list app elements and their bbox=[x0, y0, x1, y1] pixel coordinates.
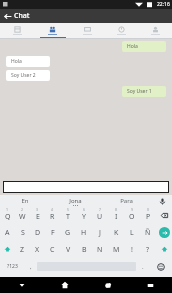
staticText: C bbox=[50, 245, 55, 255]
button[interactable]: G bbox=[60, 224, 76, 241]
button[interactable]: Message input bbox=[3, 181, 169, 193]
button[interactable]: 5 bbox=[60, 207, 76, 224]
staticText: Q bbox=[5, 212, 11, 222]
button[interactable]: Tab 5 bbox=[138, 23, 172, 38]
button[interactable]: H bbox=[76, 224, 92, 241]
button[interactable]: 1 bbox=[0, 207, 15, 224]
staticText: D bbox=[35, 228, 41, 238]
button[interactable]: ! bbox=[124, 241, 140, 258]
button[interactable]: Shift bbox=[156, 241, 172, 258]
staticText: 3 bbox=[36, 207, 39, 212]
staticText: 9 bbox=[131, 207, 134, 212]
staticText: V bbox=[66, 245, 71, 255]
staticText: G bbox=[65, 228, 71, 238]
button[interactable]: Comma bbox=[24, 258, 37, 275]
staticText: 1 bbox=[6, 207, 9, 212]
button[interactable]: Voice input bbox=[152, 195, 172, 207]
staticText: H bbox=[81, 228, 87, 238]
button[interactable]: D bbox=[30, 224, 45, 241]
button[interactable]: Ñ bbox=[140, 224, 156, 241]
staticText: ! bbox=[131, 245, 133, 255]
button[interactable]: L bbox=[124, 224, 140, 241]
staticText: U bbox=[97, 212, 103, 222]
staticText: F bbox=[51, 228, 55, 238]
button[interactable]: Enter bbox=[156, 224, 172, 241]
button[interactable]: Recents bbox=[86, 277, 129, 293]
button[interactable]: Home bbox=[43, 277, 86, 293]
button[interactable]: 7 bbox=[92, 207, 108, 224]
button[interactable]: Hola bbox=[6, 56, 50, 67]
button[interactable]: Tab 4 bbox=[104, 23, 138, 38]
button[interactable]: Emoji bbox=[149, 258, 172, 275]
button[interactable]: 2 bbox=[15, 207, 30, 224]
button[interactable]: S bbox=[15, 224, 30, 241]
staticText: Soy User 1 bbox=[127, 88, 152, 95]
button[interactable]: Tab 3 bbox=[70, 23, 104, 38]
staticText: 5 bbox=[67, 207, 70, 212]
staticText: Y bbox=[82, 212, 86, 222]
staticText: Ñ bbox=[145, 228, 151, 238]
button[interactable]: N bbox=[92, 241, 108, 258]
button[interactable]: 4 bbox=[45, 207, 60, 224]
button[interactable]: Soy User 2 bbox=[6, 70, 50, 81]
button[interactable]: Jona bbox=[50, 195, 101, 207]
button[interactable]: X bbox=[30, 241, 45, 258]
button[interactable]: J bbox=[92, 224, 108, 241]
button[interactable]: B bbox=[76, 241, 92, 258]
button[interactable]: V bbox=[60, 241, 76, 258]
staticText: 0 bbox=[147, 207, 150, 212]
button[interactable]: Tab 2 bbox=[35, 23, 70, 38]
button[interactable]: Tab 1 bbox=[0, 23, 35, 38]
button[interactable]: 3 bbox=[30, 207, 45, 224]
staticText: J bbox=[99, 228, 101, 238]
staticText: 8 bbox=[115, 207, 118, 212]
staticText: 2 bbox=[21, 207, 24, 212]
staticText: Chat bbox=[14, 11, 30, 21]
staticText: Para bbox=[120, 197, 133, 205]
button[interactable]: A bbox=[0, 224, 15, 241]
staticText: M bbox=[113, 245, 120, 255]
staticText: ? bbox=[146, 245, 150, 255]
staticText: K bbox=[114, 228, 119, 238]
button[interactable]: Hola bbox=[122, 41, 166, 52]
staticText: L bbox=[130, 228, 134, 238]
staticText: En bbox=[21, 197, 29, 205]
button[interactable]: 0 bbox=[140, 207, 156, 224]
staticText: Soy User 2 bbox=[11, 72, 36, 79]
staticText: N bbox=[97, 245, 103, 255]
staticText: Z bbox=[20, 245, 25, 255]
staticText: 7 bbox=[99, 207, 102, 212]
staticText: 4 bbox=[51, 207, 54, 212]
staticText: A bbox=[5, 228, 10, 238]
button[interactable]: Z bbox=[15, 241, 30, 258]
button[interactable]: F bbox=[45, 224, 60, 241]
button[interactable]: C bbox=[45, 241, 60, 258]
button[interactable]: Back bbox=[0, 9, 14, 23]
button[interactable]: Soy User 1 bbox=[122, 86, 166, 97]
button[interactable]: Backspace bbox=[156, 207, 172, 224]
button[interactable]: M bbox=[108, 241, 124, 258]
staticText: 6 bbox=[83, 207, 86, 212]
button[interactable]: ?123 bbox=[0, 258, 24, 275]
staticText: R bbox=[50, 212, 55, 222]
button[interactable]: Shift bbox=[0, 241, 15, 258]
staticText: Hola bbox=[127, 43, 138, 50]
button[interactable]: Hide keyboard bbox=[0, 277, 43, 293]
staticText: X bbox=[35, 245, 40, 255]
button[interactable]: 8 bbox=[108, 207, 124, 224]
button[interactable]: En bbox=[0, 195, 50, 207]
button[interactable]: 9 bbox=[124, 207, 140, 224]
button[interactable]: 6 bbox=[76, 207, 92, 224]
staticText: O bbox=[129, 212, 135, 222]
button[interactable]: Period bbox=[136, 258, 149, 275]
button[interactable]: K bbox=[108, 224, 124, 241]
staticText: S bbox=[21, 228, 25, 238]
button[interactable]: ? bbox=[140, 241, 156, 258]
button[interactable]: Para bbox=[101, 195, 152, 207]
staticText: B bbox=[82, 245, 87, 255]
staticText: P bbox=[146, 212, 151, 222]
button[interactable]: Switch keyboard bbox=[129, 277, 172, 293]
staticText: Hola bbox=[11, 58, 22, 65]
staticText: T bbox=[66, 212, 70, 222]
